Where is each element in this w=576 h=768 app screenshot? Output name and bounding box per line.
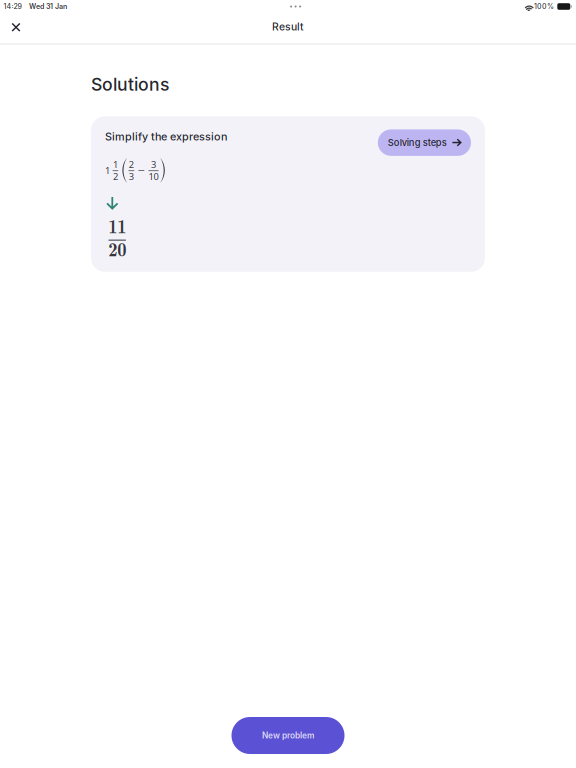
staticText: 2: [113, 170, 118, 183]
button[interactable]: New problem: [231, 717, 344, 754]
button[interactable]: Close: [0, 12, 32, 44]
staticText: 11: [108, 212, 126, 239]
staticText: Result: [272, 20, 304, 33]
staticText: 20: [108, 235, 126, 262]
staticText: 10: [148, 170, 158, 183]
staticText: Solving steps: [388, 137, 447, 148]
staticText: 14:29: [3, 2, 21, 11]
staticText: 2: [129, 158, 134, 171]
staticText: 3: [151, 158, 156, 171]
staticText: Wed 31 Jan: [29, 2, 67, 11]
staticText: Solutions: [91, 74, 169, 95]
button[interactable]: Solving steps: [378, 129, 471, 156]
staticText: 100%: [534, 2, 554, 11]
staticText: Simplify the expression: [105, 130, 227, 143]
staticText: New problem: [262, 730, 314, 740]
staticText: 1: [105, 164, 110, 177]
staticText: 3: [129, 170, 134, 183]
staticText: 1: [113, 158, 118, 171]
